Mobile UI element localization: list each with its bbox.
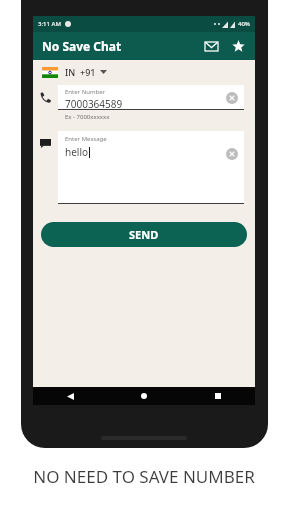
button[interactable]: Favorite (226, 34, 250, 58)
staticText: hello (65, 145, 89, 159)
button[interactable]: Enter Number (58, 85, 244, 110)
staticText: SEND (129, 227, 159, 242)
staticText: 40% (238, 20, 250, 28)
button[interactable]: SEND (41, 222, 247, 247)
button[interactable]: Clear number (226, 92, 238, 104)
staticText: Ex - 7000xxxxxx (65, 113, 110, 121)
staticText: NO NEED TO SAVE NUMBER (33, 465, 255, 488)
staticText: Enter Number (65, 88, 106, 96)
button[interactable]: Home (107, 387, 181, 405)
button[interactable]: IN (42, 63, 255, 81)
button[interactable]: Back (33, 387, 107, 405)
button[interactable]: Clear message (226, 148, 238, 160)
staticText: IN (65, 66, 76, 78)
staticText: 3:11 AM (38, 20, 61, 28)
button[interactable]: Enter Message (58, 131, 244, 204)
staticText: 7000364589 (65, 97, 123, 110)
button[interactable]: Mail (199, 34, 223, 58)
staticText: No Save Chat (42, 38, 122, 54)
button[interactable]: Recents (181, 387, 255, 405)
staticText: Enter Message (65, 135, 107, 143)
staticText: +91 (80, 66, 96, 78)
